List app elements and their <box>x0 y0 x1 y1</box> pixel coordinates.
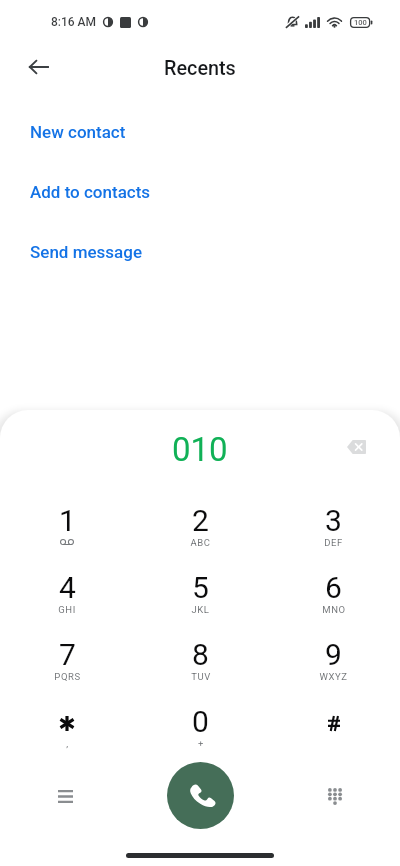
staticText: ABC <box>190 537 211 548</box>
button[interactable]: 3 <box>267 503 400 570</box>
button[interactable]: 1 <box>0 503 134 570</box>
button[interactable]: Call history <box>42 773 88 819</box>
button[interactable]: New contact <box>0 112 400 152</box>
staticText: 9 <box>325 637 342 672</box>
button[interactable]: star <box>0 704 134 771</box>
staticText: 2 <box>192 503 209 538</box>
staticText: 4 <box>59 570 76 605</box>
staticText: JKL <box>191 604 210 615</box>
staticText: , <box>66 738 69 749</box>
staticText: 3 <box>325 503 342 538</box>
button[interactable]: 4 <box>0 570 134 637</box>
button[interactable]: Add to contacts <box>0 172 400 212</box>
staticText: PQRS <box>54 671 81 682</box>
other: star <box>60 716 74 731</box>
staticText: TUV <box>191 671 211 682</box>
button[interactable]: 2 <box>134 503 267 570</box>
staticText: + <box>198 738 204 749</box>
button[interactable]: Backspace <box>336 427 376 467</box>
staticText: New contact <box>30 122 126 142</box>
staticText: DEF <box>324 537 343 548</box>
staticText: 5 <box>192 570 209 605</box>
button[interactable]: Send message <box>0 232 400 272</box>
button[interactable]: 7 <box>0 637 134 704</box>
staticText: Recents <box>164 57 236 80</box>
staticText: GHI <box>58 604 76 615</box>
staticText: Add to contacts <box>30 182 151 202</box>
button[interactable]: 5 <box>134 570 267 637</box>
staticText: 7 <box>59 637 76 672</box>
staticText: MNO <box>322 604 346 615</box>
staticText: 1 <box>59 503 76 538</box>
other: pound <box>328 716 340 731</box>
staticText: 0 <box>192 704 209 739</box>
staticText: 8:16 AM <box>51 15 97 29</box>
button[interactable]: 8 <box>134 637 267 704</box>
staticText: WXYZ <box>319 671 348 682</box>
button[interactable]: pound <box>267 704 400 771</box>
staticText: 8 <box>192 637 209 672</box>
button[interactable]: Call <box>167 762 234 829</box>
button[interactable]: 6 <box>267 570 400 637</box>
staticText: 010 <box>172 430 228 469</box>
staticText: 6 <box>325 570 342 605</box>
button[interactable]: 9 <box>267 637 400 704</box>
staticText: Send message <box>30 242 142 262</box>
staticText: 100 <box>354 18 367 27</box>
button[interactable]: Back <box>16 45 60 89</box>
button[interactable]: 0 <box>134 704 267 771</box>
button[interactable]: Dialpad <box>312 773 358 819</box>
